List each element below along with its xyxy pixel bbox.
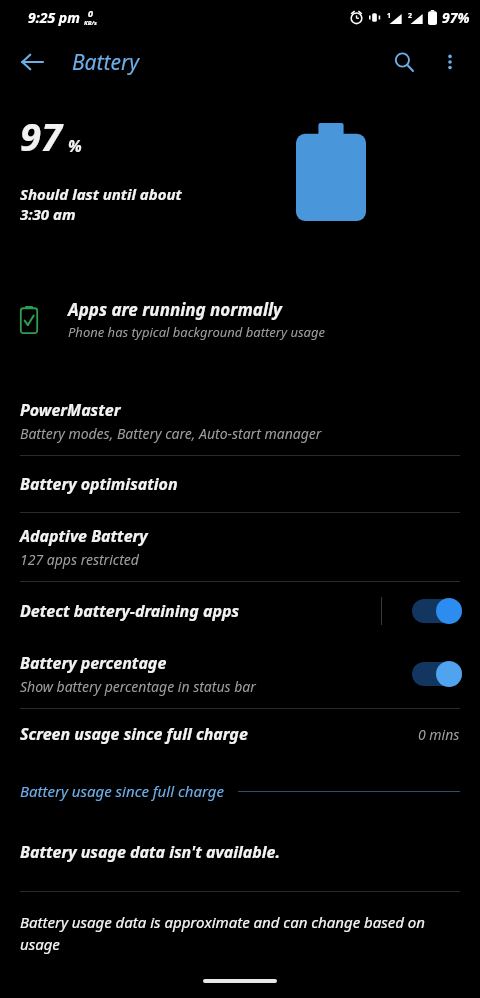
staticText: KB/s: [84, 19, 97, 27]
staticText: 97: [20, 110, 62, 162]
staticText: Screen usage since full charge: [20, 723, 418, 745]
button[interactable]: Apps are running normally: [0, 292, 480, 347]
button[interactable]: Battery percentage: [0, 640, 480, 708]
staticText: Phone has typical background battery usa…: [68, 323, 325, 341]
button[interactable]: More options: [428, 40, 472, 84]
staticText: 1: [387, 11, 392, 21]
button[interactable]: PowerMaster: [0, 387, 480, 455]
staticText: Adaptive Battery: [20, 525, 148, 547]
staticText: Apps are running normally: [68, 298, 282, 321]
staticText: Battery percentage: [20, 652, 167, 674]
staticText: Battery usage data isn't available.: [20, 841, 280, 863]
button[interactable]: Screen usage since full charge: [0, 709, 480, 759]
staticText: Battery modes, Battery care, Auto-start …: [20, 424, 322, 443]
staticText: 0 mins: [418, 725, 460, 744]
staticText: Battery usage since full charge: [20, 781, 224, 801]
staticText: 0: [88, 7, 93, 19]
button[interactable]: Battery usage data isn't available.: [0, 835, 480, 869]
staticText: 2: [408, 11, 413, 21]
staticText: Show battery percentage in status bar: [20, 677, 256, 696]
staticText: %: [68, 135, 82, 157]
staticText: Detect battery-draining apps: [20, 600, 240, 622]
button[interactable]: Search: [382, 40, 426, 84]
staticText: 9:25 pm: [28, 8, 80, 27]
button[interactable]: [412, 598, 462, 624]
button[interactable]: Detect battery-draining apps: [0, 582, 480, 640]
button[interactable]: Adaptive Battery: [0, 513, 480, 581]
staticText: Should last until about: [20, 184, 182, 204]
button[interactable]: Back: [10, 40, 54, 84]
button[interactable]: [412, 661, 462, 687]
staticText: Battery usage data is approximate and ca…: [20, 912, 460, 955]
staticText: 97%: [442, 8, 470, 27]
staticText: Battery: [72, 48, 140, 77]
staticText: 3:30 am: [20, 204, 76, 224]
staticText: 127 apps restricted: [20, 550, 139, 569]
staticText: PowerMaster: [20, 399, 121, 421]
button[interactable]: Battery optimisation: [0, 456, 480, 512]
staticText: Battery optimisation: [20, 473, 178, 495]
